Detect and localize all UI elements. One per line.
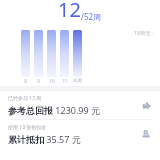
staticText: 10 <box>49 78 55 84</box>
button[interactable]: 已经参与 13 周 <box>0 91 160 119</box>
button[interactable] <box>21 30 30 77</box>
staticText: 本周 <box>73 78 82 84</box>
button[interactable] <box>73 30 82 77</box>
staticText: 8 <box>24 78 27 84</box>
staticText: 12 <box>58 0 81 22</box>
staticText: 参考总回报 <box>8 105 53 116</box>
staticText: 11 <box>62 78 68 84</box>
button[interactable]: 12 <box>0 0 160 26</box>
staticText: 累计抵扣 <box>8 134 44 145</box>
button[interactable]: 抵扣详情 <box>139 127 153 141</box>
staticText: 9 <box>37 78 40 84</box>
button[interactable] <box>34 30 43 77</box>
button[interactable] <box>47 30 56 77</box>
button[interactable] <box>60 30 69 77</box>
staticText: 1230.99 元 <box>53 104 100 116</box>
staticText: 使用 13 张抵扣金 <box>8 124 47 131</box>
staticText: 1000元 · <box>134 30 154 37</box>
button[interactable]: 使用 13 张抵扣金 <box>0 120 160 148</box>
staticText: 已经参与 13 周 <box>8 95 42 102</box>
button[interactable]: 回报详情 <box>139 98 153 112</box>
staticText: /52周 <box>81 11 102 22</box>
staticText: 35.57 元 <box>44 133 81 145</box>
